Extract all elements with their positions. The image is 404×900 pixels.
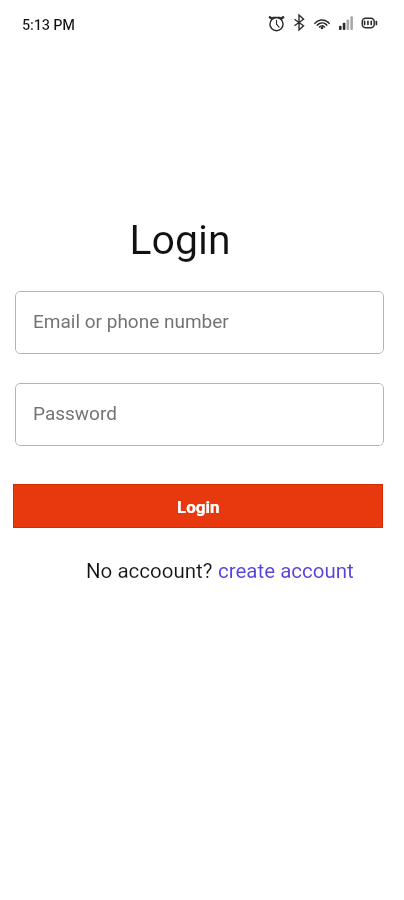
other: Signal <box>339 16 353 30</box>
button[interactable]: create account <box>218 559 354 583</box>
staticText: Email or phone number <box>33 310 229 332</box>
staticText: No accoount? <box>86 559 218 583</box>
button[interactable]: Email or phone number <box>15 291 384 354</box>
staticText: 5:13 PM <box>22 17 75 34</box>
other: Alarm <box>268 14 285 31</box>
other: Wi-Fi <box>313 16 331 29</box>
button[interactable]: Password <box>15 383 384 446</box>
staticText: Login <box>177 497 220 517</box>
staticText: Password <box>33 402 117 424</box>
staticText: create account <box>218 559 354 583</box>
other: Battery <box>361 17 378 29</box>
button[interactable]: Login <box>13 484 383 528</box>
other: Bluetooth <box>293 15 305 30</box>
staticText: Login <box>129 216 231 264</box>
